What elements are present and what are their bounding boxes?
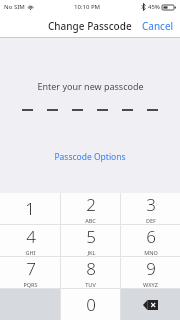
staticText: 3 <box>146 193 156 216</box>
button[interactable]: 3 <box>121 193 180 224</box>
staticText: Enter your new passcode <box>37 80 144 92</box>
staticText: 9 <box>146 257 156 280</box>
staticText: 1 <box>25 197 35 220</box>
staticText: No SIM <box>4 3 25 11</box>
staticText: 4 <box>26 225 36 248</box>
button[interactable]: Delete <box>121 289 180 320</box>
staticText: 6 <box>146 225 156 248</box>
button[interactable]: 7 <box>0 257 60 288</box>
button[interactable]: 6 <box>121 225 180 256</box>
button[interactable]: 8 <box>61 257 120 288</box>
staticText: DEF <box>146 217 156 224</box>
button[interactable]: Passcode Options <box>48 148 132 166</box>
staticText: 8 <box>86 257 96 280</box>
staticText: JKL <box>87 249 96 256</box>
staticText: PQRS <box>23 281 38 288</box>
button[interactable]: 5 <box>61 225 120 256</box>
staticText: 5 <box>86 225 96 248</box>
button[interactable]: Cancel <box>136 15 180 37</box>
button[interactable]: 0 <box>61 289 120 320</box>
staticText: GHI <box>25 249 36 256</box>
staticText: TUV <box>85 281 96 288</box>
staticText: Cancel <box>142 19 174 33</box>
staticText: MNO <box>144 249 158 256</box>
staticText: 2 <box>86 193 96 216</box>
button[interactable]: 9 <box>121 257 180 288</box>
staticText: 7 <box>26 257 36 280</box>
button[interactable]: 1 <box>0 193 60 224</box>
staticText: 0 <box>86 293 96 316</box>
staticText: ABC <box>85 217 96 224</box>
staticText: 45% <box>148 3 160 11</box>
staticText: 10:10 PM <box>74 3 101 11</box>
staticText: WXYZ <box>143 281 158 288</box>
staticText: Passcode Options <box>54 151 126 163</box>
button[interactable]: 2 <box>61 193 120 224</box>
staticText: Change Passcode <box>48 19 132 33</box>
button[interactable]: 4 <box>0 225 60 256</box>
